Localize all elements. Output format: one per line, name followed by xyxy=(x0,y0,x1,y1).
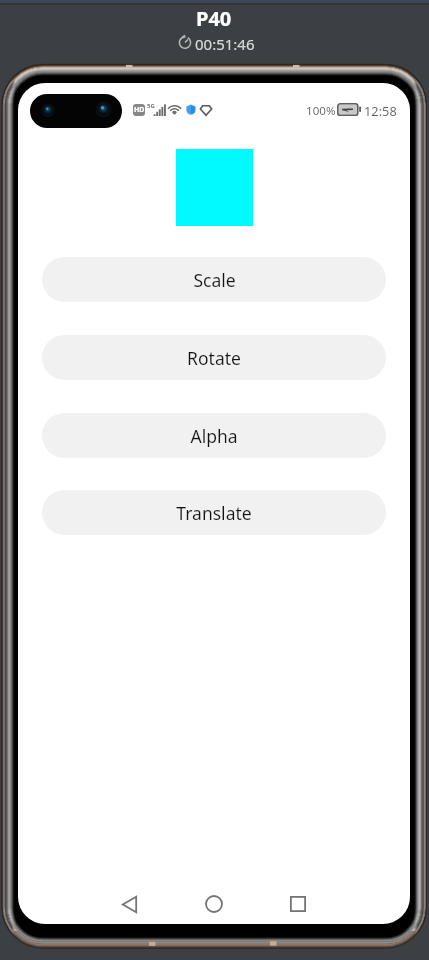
button[interactable]: Recents xyxy=(281,887,315,921)
staticText: Scale xyxy=(193,268,236,292)
button[interactable]: Back xyxy=(112,887,146,921)
staticText: 00:51:46 xyxy=(195,34,255,54)
button[interactable]: Home xyxy=(197,887,231,921)
button[interactable]: Translate xyxy=(42,490,386,535)
button[interactable]: Alpha xyxy=(42,413,386,458)
staticText: 12:58 xyxy=(364,102,397,119)
staticText: Alpha xyxy=(190,424,238,448)
staticText: Rotate xyxy=(187,346,241,370)
button[interactable]: Scale xyxy=(42,257,386,302)
staticText: P40 xyxy=(196,5,232,32)
staticText: 100% xyxy=(306,103,336,119)
staticText: HD xyxy=(134,105,145,115)
staticText: 5G xyxy=(147,102,155,110)
staticText: Translate xyxy=(176,501,252,525)
button[interactable]: Rotate xyxy=(42,335,386,380)
